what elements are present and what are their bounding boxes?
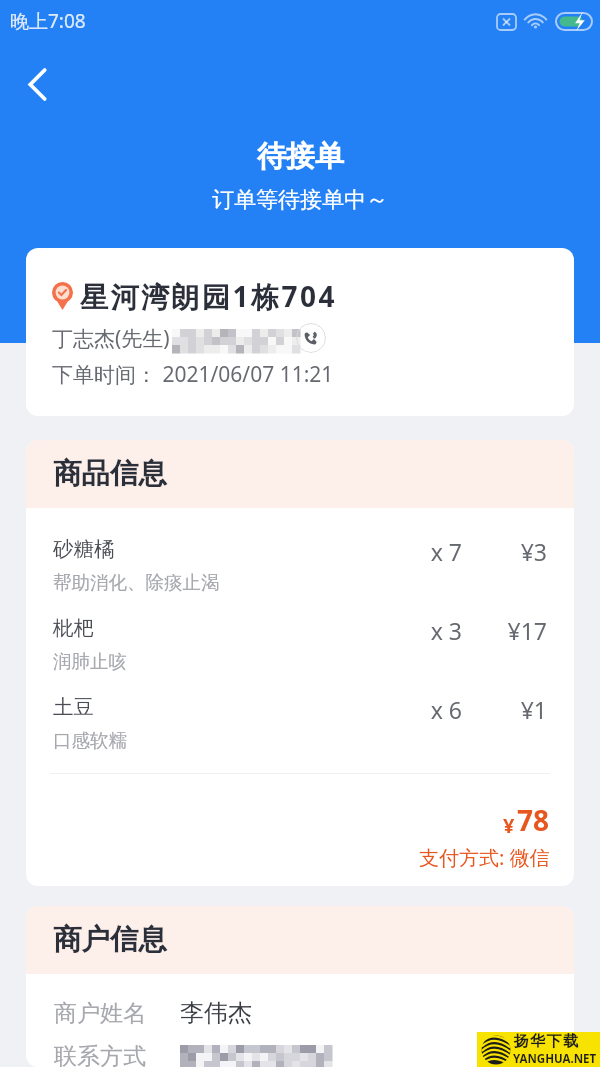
staticText: x 6 (390, 694, 462, 725)
staticText: 土豆 (53, 694, 94, 720)
staticText: x 7 (390, 536, 462, 567)
staticText: 丁志杰(先生) (52, 324, 170, 353)
staticText: x 3 (390, 615, 462, 646)
staticText: 晚上7:08 (10, 8, 86, 34)
staticText: 商户信息 (53, 922, 167, 958)
staticText: 枇杷 (53, 615, 94, 641)
staticText: 订单等待接单中～ (212, 186, 388, 214)
staticText: 下单时间： 2021/06/07 11:21 (52, 360, 334, 389)
staticText: 联系方式 (54, 1042, 146, 1067)
staticText: 商品信息 (53, 456, 167, 492)
staticText: ¥1 (462, 694, 547, 725)
staticText: 支付方式: 微信 (419, 844, 550, 871)
staticText: 润肺止咳 (53, 650, 127, 673)
staticText: 砂糖橘 (53, 536, 115, 562)
staticText: 商户姓名 (54, 999, 146, 1028)
button[interactable]: Call (296, 323, 326, 353)
staticText: YANGHUA.NET (513, 1051, 597, 1067)
staticText: 星河湾朗园1栋704 (80, 277, 338, 315)
staticText: ¥ (503, 812, 515, 839)
staticText: 待接单 (257, 138, 344, 175)
button[interactable]: Back (18, 56, 56, 112)
staticText: 口感软糯 (53, 729, 127, 752)
button[interactable]: 星河湾朗园1栋704 (26, 248, 574, 416)
staticText: ¥17 (462, 615, 547, 646)
staticText: ¥3 (462, 536, 547, 567)
staticText: 78 (517, 801, 550, 839)
staticText: 帮助消化、除痰止渴 (53, 571, 220, 594)
staticText: 李伟杰 (180, 998, 252, 1028)
staticText: 扬华下载 (513, 1032, 579, 1051)
